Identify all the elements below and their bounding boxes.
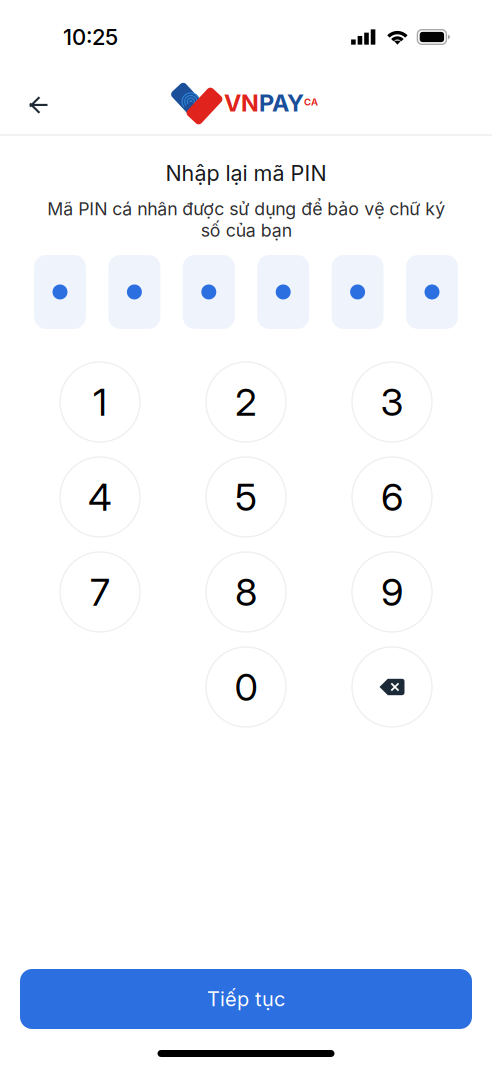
button[interactable]: 3 [352, 362, 432, 442]
staticText: VN [224, 89, 259, 117]
button[interactable]: 7 [60, 552, 140, 632]
staticText: Mã PIN cá nhân được sử dụng để bảo vệ ch… [47, 198, 445, 241]
staticText: 1 [93, 379, 107, 425]
staticText: 8 [235, 569, 257, 615]
button[interactable]: 5 [206, 457, 286, 537]
button[interactable]: Back [14, 81, 62, 129]
staticText: 3 [380, 379, 403, 425]
staticText: 4 [88, 474, 112, 520]
staticText: Nhập lại mã PIN [165, 160, 326, 186]
button[interactable]: 4 [60, 457, 140, 537]
button[interactable]: 1 [60, 362, 140, 442]
staticText: CA [304, 96, 318, 108]
staticText: 0 [234, 664, 257, 710]
button[interactable]: 9 [352, 552, 432, 632]
staticText: 9 [381, 569, 403, 615]
staticText: 2 [235, 379, 257, 425]
button[interactable]: 0 [206, 647, 286, 727]
button[interactable]: 2 [206, 362, 286, 442]
staticText: Tiếp tục [207, 987, 285, 1011]
staticText: 7 [90, 569, 110, 615]
staticText: 6 [381, 474, 403, 520]
button[interactable]: Delete [352, 647, 432, 727]
staticText: PAY [259, 89, 304, 117]
button[interactable]: 8 [206, 552, 286, 632]
button[interactable]: Tiếp tục [20, 969, 472, 1029]
staticText: 5 [235, 474, 257, 520]
staticText: 10:25 [63, 24, 118, 50]
button[interactable]: 6 [352, 457, 432, 537]
